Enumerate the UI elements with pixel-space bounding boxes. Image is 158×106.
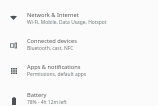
staticText: Connected devices [27,37,77,45]
button[interactable]: Network & Internet [0,9,158,27]
staticText: 78% - 4h 12m left [27,99,67,106]
staticText: Bluetooth, cast, NFC [27,45,74,52]
button[interactable]: Connected devices [0,35,158,53]
staticText: Battery [27,91,47,99]
button[interactable]: Apps & notifications [0,61,158,79]
staticText: Network & Internet [27,11,79,19]
staticText: Permissions, default apps [27,71,87,78]
staticText: Apps & notifications [27,63,81,71]
staticText: Wi-Fi, Mobile, Data Usage, Hotspot [27,19,107,26]
button[interactable]: Battery [0,89,158,106]
